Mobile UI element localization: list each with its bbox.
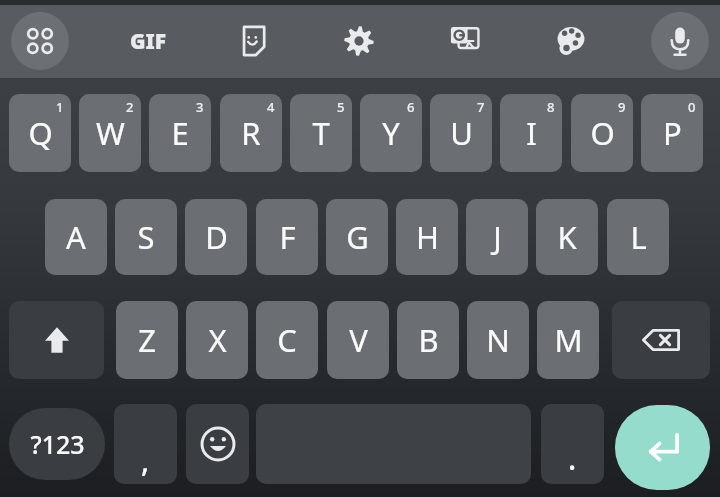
button[interactable]: F (256, 199, 318, 275)
staticText: I (526, 112, 537, 154)
button[interactable]: Emoji (186, 404, 249, 484)
button[interactable]: Shift (9, 301, 104, 379)
staticText: X (208, 319, 227, 361)
button[interactable]: V (327, 301, 389, 379)
staticText: 5 (337, 98, 345, 116)
staticText: 2 (126, 98, 134, 116)
button[interactable]: Themes (542, 12, 600, 70)
staticText: 6 (407, 98, 415, 116)
staticText: 3 (196, 98, 204, 116)
staticText: S (137, 216, 155, 258)
button[interactable]: Stickers (224, 12, 282, 70)
button[interactable]: E (149, 94, 211, 172)
button[interactable]: C (256, 301, 318, 379)
button[interactable]: K (536, 199, 598, 275)
button[interactable]: Q (9, 94, 71, 172)
staticText: B (418, 319, 439, 361)
button[interactable]: S (115, 199, 177, 275)
staticText: 4 (267, 98, 275, 116)
staticText: ?123 (30, 427, 85, 461)
staticText: A (66, 216, 86, 258)
button[interactable]: Voice input (651, 12, 709, 70)
button[interactable]: Settings (330, 12, 388, 70)
button[interactable]: Y (360, 94, 422, 172)
button[interactable]: Backspace (612, 301, 710, 379)
button[interactable]: X (186, 301, 248, 379)
staticText: R (241, 112, 261, 154)
staticText: U (450, 112, 473, 154)
staticText: 0 (688, 98, 696, 116)
staticText: , (141, 440, 150, 481)
button[interactable]: W (79, 94, 141, 172)
staticText: 8 (547, 98, 555, 116)
staticText: H (416, 216, 439, 258)
staticText: G (346, 216, 369, 258)
staticText: J (493, 216, 502, 258)
staticText: 1 (56, 98, 64, 116)
staticText: Z (138, 319, 156, 361)
staticText: 7 (477, 98, 485, 116)
button[interactable]: M (537, 301, 599, 379)
staticText: T (312, 112, 330, 154)
button[interactable]: U (430, 94, 492, 172)
staticText: C (277, 319, 297, 361)
button[interactable]: P (641, 94, 703, 172)
staticText: P (663, 112, 682, 154)
staticText: L (630, 216, 647, 258)
button[interactable]: Translate (436, 12, 494, 70)
button[interactable]: O (571, 94, 633, 172)
button[interactable]: Z (116, 301, 178, 379)
button[interactable]: Enter (615, 405, 710, 490)
staticText: F (279, 216, 296, 258)
button[interactable]: I (500, 94, 562, 172)
staticText: . (568, 438, 577, 479)
staticText: 9 (618, 98, 626, 116)
button[interactable]: . (541, 404, 604, 484)
button[interactable]: J (466, 199, 528, 275)
staticText: N (486, 319, 510, 361)
staticText: K (557, 216, 577, 258)
staticText: D (205, 216, 228, 258)
staticText: E (171, 112, 189, 154)
button[interactable]: D (185, 199, 247, 275)
button[interactable]: R (220, 94, 282, 172)
staticText: V (349, 319, 368, 361)
button[interactable]: B (397, 301, 459, 379)
button[interactable]: N (467, 301, 529, 379)
button[interactable]: Toolbar menu (11, 12, 69, 70)
staticText: W (96, 112, 125, 154)
button[interactable]: G (326, 199, 388, 275)
button[interactable]: , (114, 404, 177, 484)
button[interactable]: H (396, 199, 458, 275)
button[interactable]: T (290, 94, 352, 172)
staticText: GIF (130, 27, 167, 56)
button[interactable]: ?123 (9, 408, 105, 480)
staticText: M (554, 319, 583, 361)
button[interactable]: A (45, 199, 107, 275)
staticText: O (590, 112, 615, 154)
staticText: Q (28, 112, 53, 154)
button[interactable]: L (607, 199, 669, 275)
staticText: Y (382, 112, 400, 154)
button[interactable]: GIF (119, 12, 177, 70)
